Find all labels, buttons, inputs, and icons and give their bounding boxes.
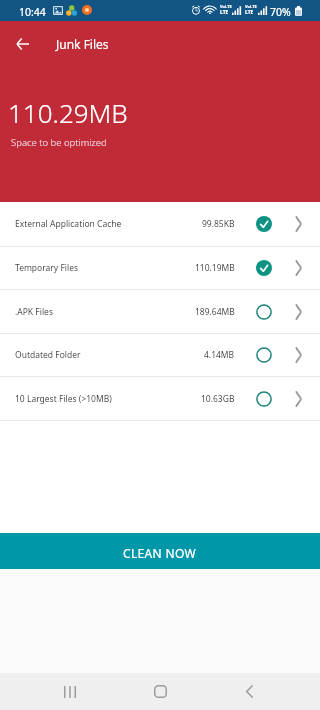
button[interactable]: Temporary Files <box>0 247 320 289</box>
button[interactable]: Back <box>0 22 44 66</box>
button[interactable]: Back <box>226 673 272 710</box>
button[interactable]: 10 Largest Files (>10MB) <box>0 377 320 420</box>
staticText: 70% <box>270 5 291 19</box>
staticText: 99.85KB <box>202 218 235 230</box>
button[interactable]: Outdated Folder <box>0 334 320 376</box>
staticText: 110.19MB <box>195 262 235 274</box>
button[interactable]: .APK Files <box>0 290 320 333</box>
staticText: LTE <box>220 9 229 16</box>
staticText: 10.63GB <box>201 393 235 405</box>
staticText: Outdated Folder <box>15 349 204 361</box>
staticText: CLEAN NOW <box>123 545 197 561</box>
staticText: 4.14MB <box>204 349 235 361</box>
staticText: VoLTE <box>245 4 257 9</box>
staticText: 10 Largest Files (>10MB) <box>15 393 201 405</box>
staticText: VoLTE <box>220 4 232 9</box>
staticText: 10:44 <box>19 5 46 19</box>
button[interactable]: External Application Cache <box>0 202 320 246</box>
button[interactable]: CLEAN NOW <box>0 533 320 569</box>
staticText: LTE <box>245 9 254 16</box>
staticText: Junk Files <box>56 36 109 52</box>
staticText: 110.29MB <box>8 95 128 130</box>
staticText: External Application Cache <box>15 218 202 230</box>
staticText: Temporary Files <box>15 262 195 274</box>
button[interactable]: Home <box>137 673 183 710</box>
button[interactable]: Recent apps <box>47 673 93 710</box>
staticText: 189.64MB <box>195 306 235 318</box>
staticText: .APK Files <box>15 306 195 318</box>
staticText: Space to be optimized <box>11 136 107 149</box>
